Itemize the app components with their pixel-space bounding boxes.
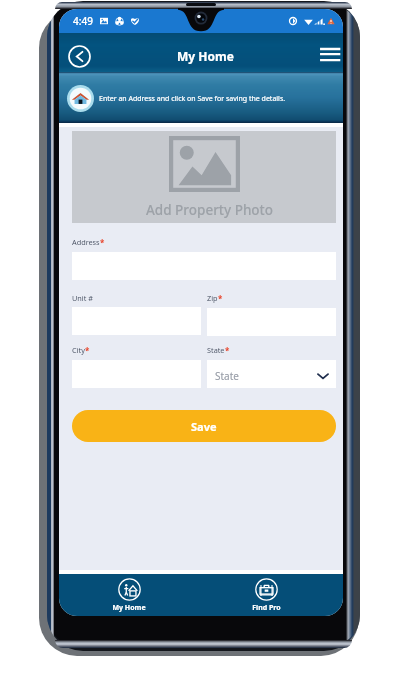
staticText: Zip — [207, 293, 218, 303]
button[interactable]: Find Pro — [238, 576, 295, 615]
staticText: * — [225, 345, 230, 356]
button[interactable]: Menu — [319, 40, 343, 70]
button[interactable]: Add Property Photo — [72, 131, 336, 223]
staticText: My Home — [112, 603, 146, 613]
staticText: State — [215, 369, 239, 383]
staticText: Enter an Address and click on Save for s… — [99, 94, 286, 104]
staticText: Find Pro — [252, 603, 281, 613]
staticText: Add Property Photo — [146, 201, 274, 219]
staticText: * — [100, 237, 105, 248]
staticText: * — [218, 293, 223, 304]
button[interactable]: Save — [72, 410, 336, 442]
button[interactable]: State — [207, 360, 336, 388]
staticText: Unit # — [72, 293, 93, 303]
staticText: My Home — [177, 48, 234, 64]
staticText: City — [72, 345, 85, 355]
staticText: 4:49 — [73, 14, 93, 28]
staticText: Address — [72, 237, 100, 247]
button[interactable]: My Home — [98, 576, 160, 615]
staticText: * — [85, 345, 90, 356]
staticText: State — [207, 345, 225, 355]
staticText: Save — [191, 419, 217, 434]
button[interactable]: Back — [68, 45, 91, 68]
